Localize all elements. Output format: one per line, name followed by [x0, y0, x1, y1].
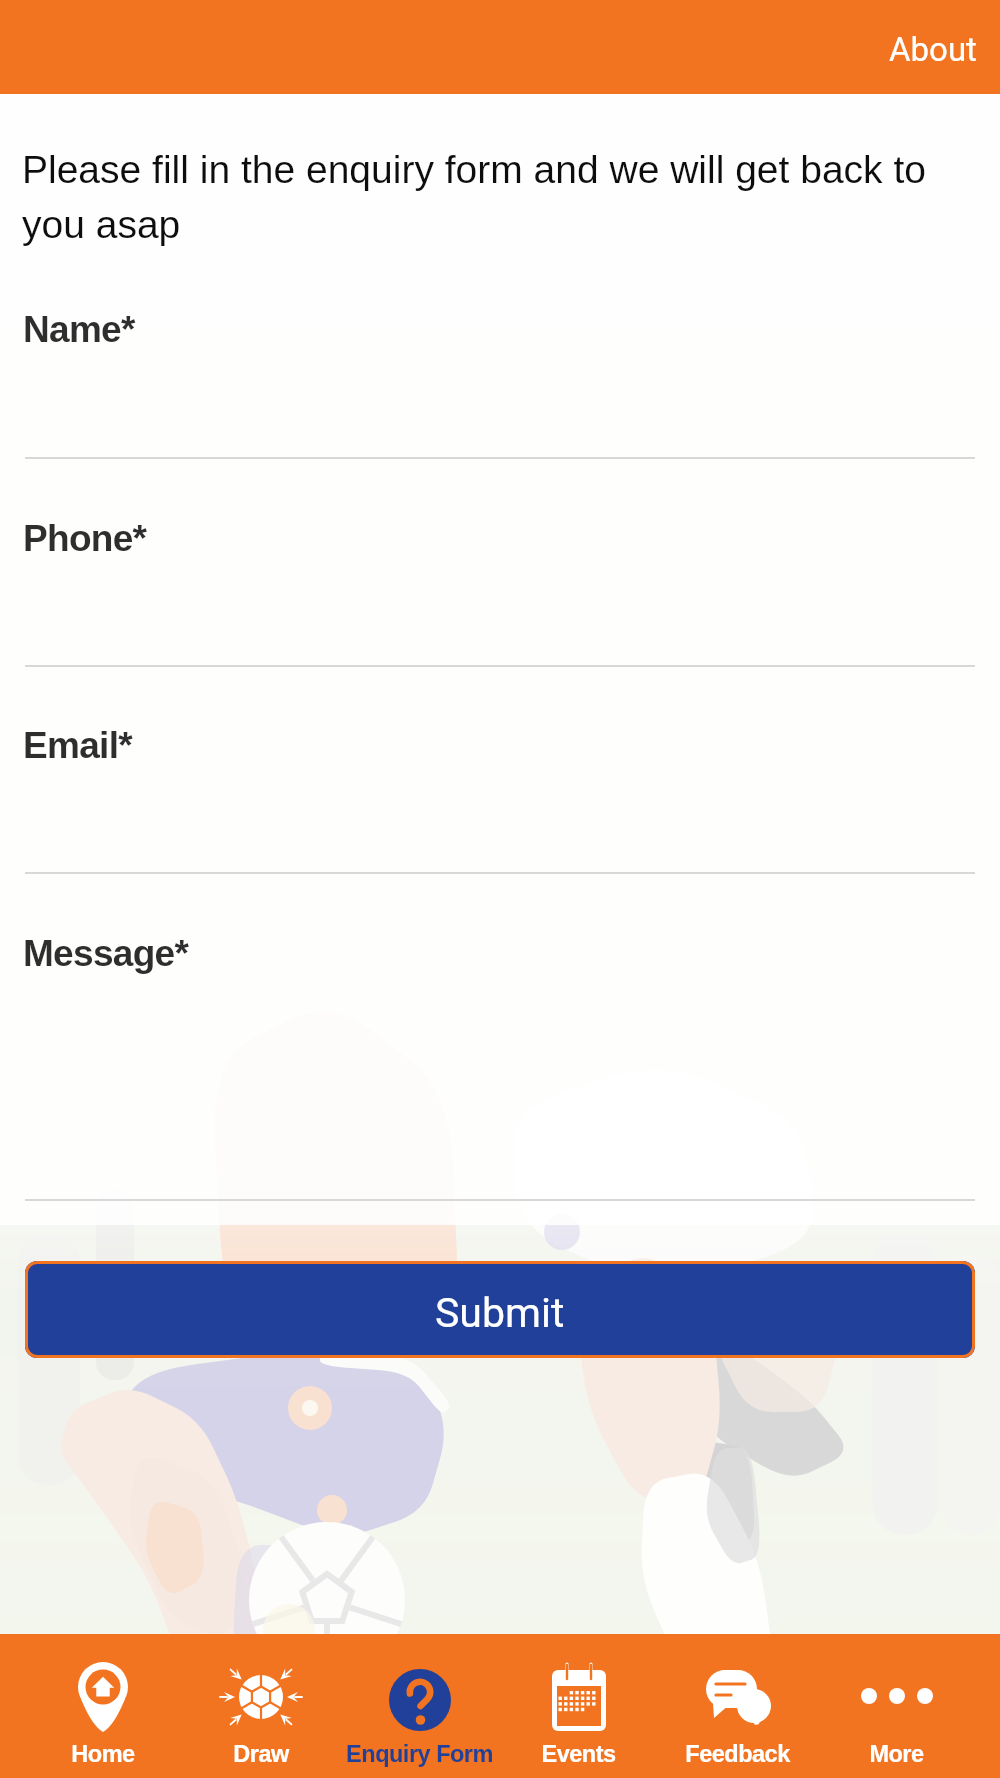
staticText: More [869, 1741, 924, 1767]
button[interactable] [0, 508, 1000, 665]
staticText: Events [541, 1741, 616, 1767]
staticText: Name* [23, 309, 135, 350]
button[interactable]: Draw [182, 1634, 340, 1778]
button[interactable] [0, 299, 1000, 457]
staticText: Please fill in the enquiry form and we w… [22, 148, 978, 246]
button[interactable]: Feedback [658, 1634, 817, 1778]
button[interactable]: Events [499, 1634, 658, 1778]
staticText: Enquiry Form [346, 1741, 493, 1767]
button[interactable] [0, 715, 1000, 872]
staticText: Draw [233, 1741, 289, 1767]
button[interactable]: Enquiry Form [340, 1634, 499, 1778]
staticText: Email* [23, 725, 132, 766]
button[interactable]: Home [24, 1634, 182, 1778]
button[interactable]: Submit [25, 1261, 975, 1358]
staticText: Feedback [685, 1741, 790, 1767]
staticText: About [889, 30, 977, 69]
button[interactable]: More [817, 1634, 976, 1778]
staticText: Home [71, 1741, 135, 1767]
staticText: Message* [23, 933, 189, 974]
staticText: Phone* [23, 518, 147, 559]
button[interactable]: About [849, 12, 1000, 83]
staticText: Submit [435, 1289, 565, 1337]
button[interactable] [0, 923, 1000, 1199]
